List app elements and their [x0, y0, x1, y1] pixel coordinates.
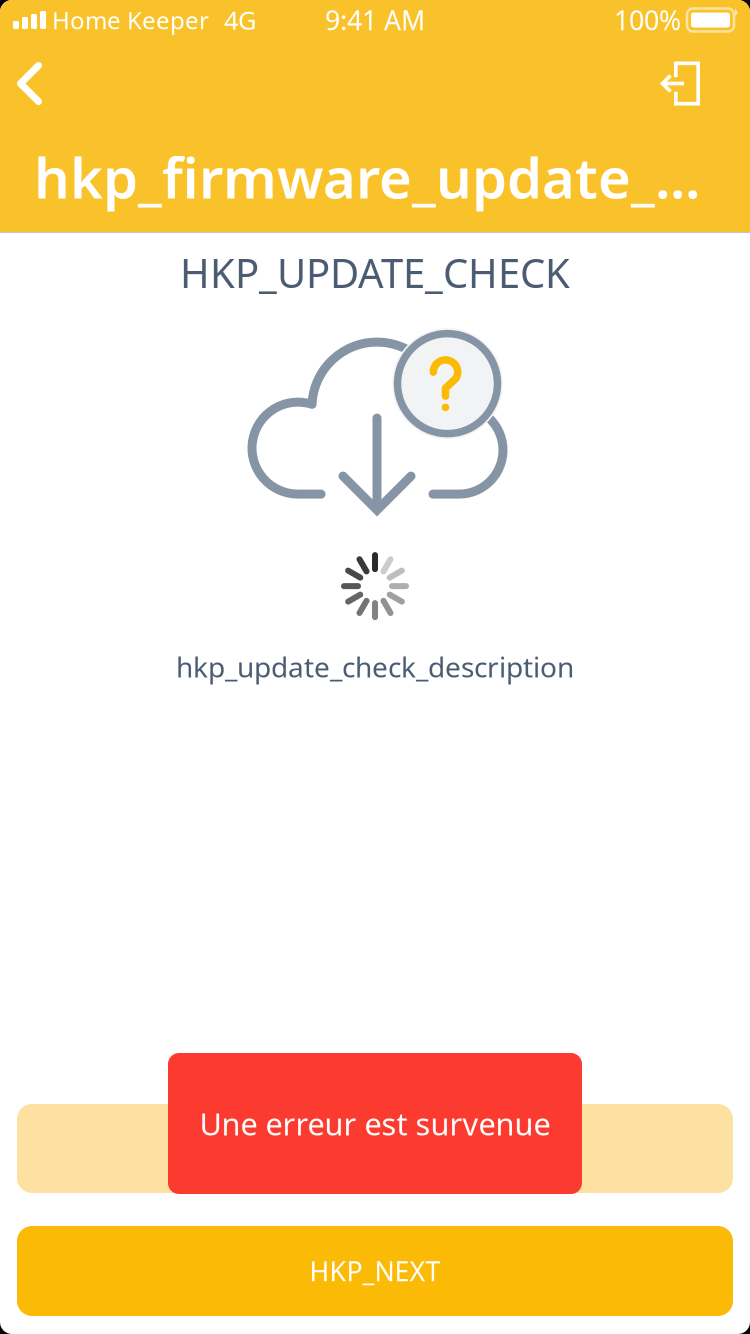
button[interactable]: HKP_NEXT — [17, 1226, 733, 1316]
staticText: Home Keeper — [52, 4, 209, 36]
staticText: hkp_update_check_description — [176, 648, 574, 685]
staticText: 9:41 AM — [325, 2, 425, 38]
staticText: hkp_firmware_update_... — [34, 140, 700, 214]
button[interactable]: Log out — [643, 50, 750, 116]
button[interactable]: Retry — [17, 1104, 733, 1193]
staticText: HKP_UPDATE_CHECK — [180, 246, 570, 299]
staticText: 4G — [224, 3, 256, 37]
staticText: Une erreur est survenue — [199, 1103, 550, 1144]
staticText: 100% — [614, 2, 681, 38]
button[interactable]: Back — [0, 51, 60, 116]
staticText: HKP_NEXT — [309, 1253, 440, 1289]
